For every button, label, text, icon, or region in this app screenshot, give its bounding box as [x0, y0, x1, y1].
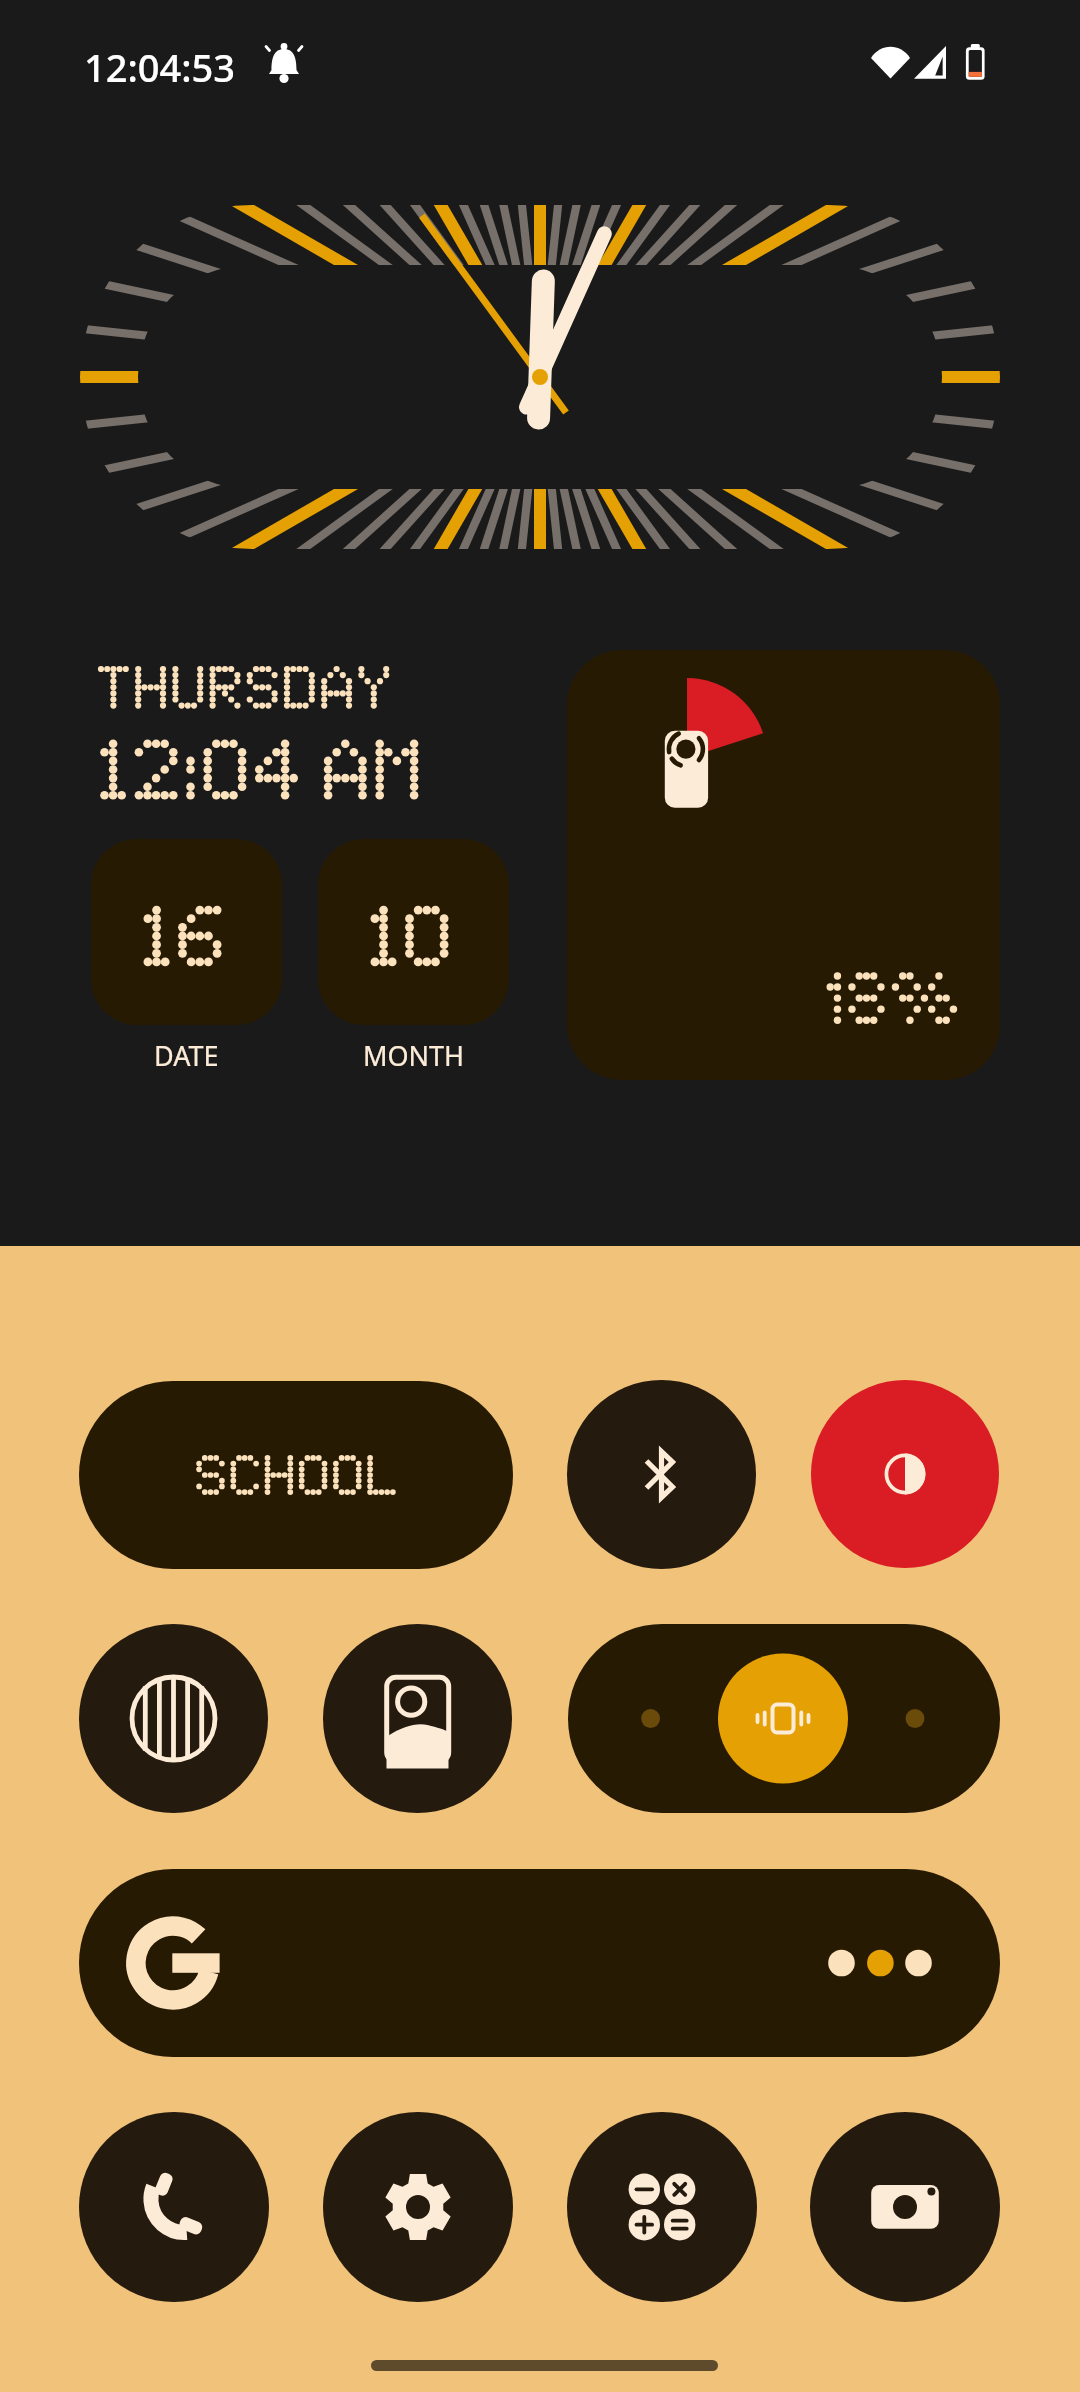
button[interactable]: Battery 18 percent: [567, 650, 1000, 1080]
button[interactable]: Sound: [79, 1624, 268, 1813]
button[interactable]: DATE: [91, 839, 282, 1025]
staticText: MONTH: [363, 1037, 465, 1074]
button[interactable]: Wallpaper: [323, 1624, 512, 1813]
button[interactable]: Search: [79, 1869, 1000, 2057]
button[interactable]: Calculator: [567, 2112, 757, 2302]
button[interactable]: Dark theme: [811, 1380, 999, 1568]
button[interactable]: Ringer mode vibrate: [568, 1624, 1000, 1813]
button[interactable]: [79, 1381, 513, 1569]
staticText: DATE: [154, 1037, 219, 1074]
button[interactable]: Phone: [79, 2112, 269, 2302]
staticText: 12:04:53: [84, 41, 236, 93]
button[interactable]: Camera: [810, 2112, 1000, 2302]
button[interactable]: MONTH: [318, 839, 509, 1025]
button[interactable]: Bluetooth: [567, 1380, 756, 1569]
button[interactable]: Settings: [323, 2112, 513, 2302]
